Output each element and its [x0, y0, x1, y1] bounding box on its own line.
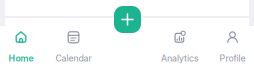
staticText: Profile: [219, 53, 245, 64]
staticText: Calendar: [55, 53, 91, 64]
button[interactable]: Profile: [206, 31, 254, 65]
button[interactable]: Add: [114, 6, 141, 33]
staticText: Home: [8, 53, 33, 64]
staticText: Analytics: [161, 53, 199, 64]
button[interactable]: Calendar: [47, 31, 99, 65]
button[interactable]: Analytics: [154, 31, 206, 65]
button[interactable]: Home: [0, 31, 47, 65]
